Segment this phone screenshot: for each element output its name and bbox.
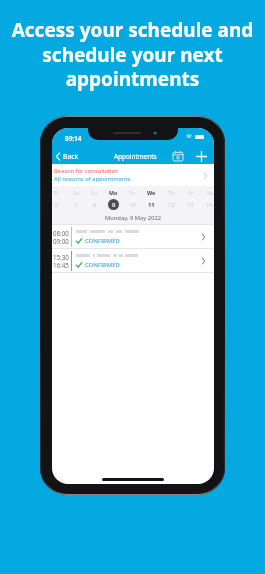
staticText: Sa <box>73 189 79 196</box>
button[interactable]: Tu <box>123 186 141 211</box>
staticText: 9 <box>112 201 116 209</box>
staticText: 10 <box>129 201 136 209</box>
staticText: Reason for consultation <box>54 167 119 175</box>
staticText: We <box>147 189 156 196</box>
button[interactable]: Back <box>52 149 84 163</box>
staticText: 16:45 <box>53 261 69 269</box>
staticText: Access your schedule and schedule your n… <box>0 17 265 92</box>
button[interactable]: Add appointment <box>193 149 209 163</box>
button[interactable]: Sa <box>200 186 214 211</box>
button[interactable]: Sa <box>66 186 84 211</box>
button[interactable]: Th <box>162 186 180 211</box>
staticText: Back <box>63 152 79 161</box>
button[interactable]: We <box>142 186 160 211</box>
button[interactable]: Su <box>85 186 103 211</box>
staticText: 12 <box>168 201 175 209</box>
staticText: Fr <box>54 189 60 196</box>
staticText: Su <box>91 189 98 196</box>
staticText: Tu <box>129 189 136 196</box>
staticText: 15:30 <box>53 253 69 261</box>
staticText: 13 <box>187 201 194 209</box>
staticText: Th <box>168 189 175 196</box>
staticText: 14 <box>206 201 213 209</box>
staticText: Appointments <box>114 152 157 161</box>
staticText: All reasons of appointments <box>54 175 131 183</box>
staticText: Mo <box>109 189 118 196</box>
staticText: 08:00 <box>53 229 69 237</box>
button[interactable]: 15:30 <box>52 249 214 272</box>
staticText: 09:00 <box>53 237 69 245</box>
staticText: 7 <box>74 201 78 209</box>
other: Battery <box>195 135 204 139</box>
staticText: Sa <box>207 189 213 196</box>
other: Wi-Fi <box>186 134 192 138</box>
button[interactable]: Calendar <box>170 149 186 163</box>
staticText: 8 <box>93 201 97 209</box>
button[interactable]: Mo <box>104 186 122 211</box>
staticText: 09:14 <box>65 134 82 143</box>
button[interactable]: Reason for consultation <box>52 164 214 186</box>
button[interactable]: 08:00 <box>52 225 214 248</box>
button[interactable]: Fr <box>181 186 199 211</box>
staticText: CONFIRMED <box>85 261 120 269</box>
staticText: CONFIRMED <box>85 237 120 245</box>
button[interactable]: Fr <box>52 186 65 211</box>
staticText: Monday, 9 May 2022 <box>105 214 162 222</box>
staticText: 6 <box>55 201 59 209</box>
staticText: 11 <box>148 201 155 209</box>
staticText: Fr <box>188 189 194 196</box>
